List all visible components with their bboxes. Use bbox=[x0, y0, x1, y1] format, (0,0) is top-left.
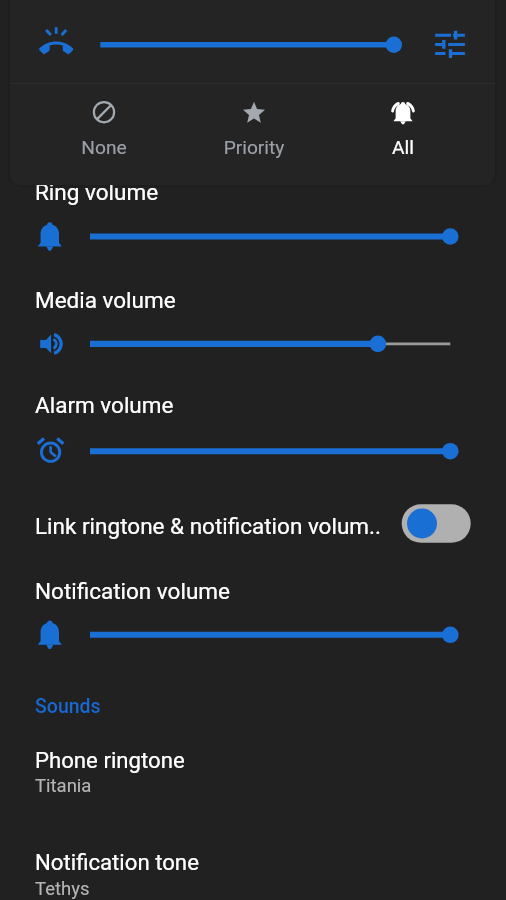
staticText: Notification volume bbox=[35, 578, 506, 604]
staticText: Sounds bbox=[35, 695, 506, 718]
button[interactable]: All bbox=[329, 85, 477, 185]
button[interactable]: Sound settings bbox=[428, 22, 474, 68]
button[interactable] bbox=[0, 844, 506, 900]
button[interactable] bbox=[0, 569, 506, 643]
staticText: Ring volume bbox=[35, 179, 506, 205]
button[interactable] bbox=[0, 278, 506, 352]
staticText: All bbox=[329, 136, 477, 159]
staticText: Priority bbox=[180, 136, 328, 159]
staticText: Link ringtone & notification volum.. bbox=[35, 513, 395, 539]
staticText: Alarm volume bbox=[35, 392, 506, 418]
button[interactable]: None bbox=[30, 85, 178, 185]
button[interactable]: Ringer mode bbox=[26, 22, 70, 66]
staticText: Notification tone bbox=[35, 849, 506, 875]
button[interactable] bbox=[0, 383, 506, 457]
staticText: Phone ringtone bbox=[35, 747, 506, 773]
staticText: Titania bbox=[35, 775, 506, 797]
staticText: None bbox=[30, 136, 178, 159]
staticText: Media volume bbox=[35, 287, 506, 313]
button[interactable] bbox=[0, 501, 506, 569]
button[interactable]: Priority bbox=[180, 85, 328, 185]
button[interactable] bbox=[0, 742, 506, 806]
button[interactable]: Ring volume slider bbox=[90, 22, 420, 66]
button[interactable] bbox=[0, 170, 506, 244]
staticText: Tethys bbox=[35, 878, 506, 900]
